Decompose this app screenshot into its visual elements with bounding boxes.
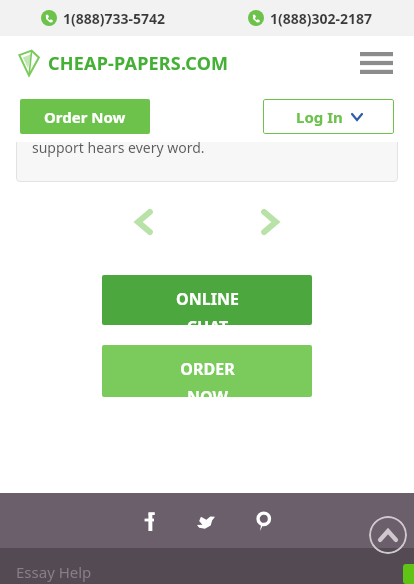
button[interactable]: support hears every word.: [16, 96, 398, 182]
button[interactable]: Facebook: [133, 509, 165, 533]
button[interactable]: Log In: [263, 99, 394, 134]
button[interactable]: Order Now: [20, 99, 150, 134]
staticText: ONLINE CHAT: [176, 288, 239, 325]
button[interactable]: Next testimonial: [252, 204, 288, 240]
staticText: Order Now: [44, 107, 126, 127]
button[interactable]: 1(888)302-2187: [207, 0, 414, 36]
staticText: CHEAP-PAPERS.COM: [48, 51, 229, 76]
button[interactable]: CHEAP-PAPERS.COM: [18, 49, 356, 77]
button[interactable]: Scroll to top: [369, 516, 407, 554]
staticText: 1(888)302-2187: [270, 9, 373, 28]
staticText: Log In: [296, 107, 343, 127]
staticText: 1(888)733-5742: [63, 9, 166, 28]
staticText: ORDER NOW: [180, 358, 235, 397]
button[interactable]: Previous testimonial: [126, 204, 162, 240]
button[interactable]: ONLINE CHAT: [102, 275, 312, 325]
button[interactable]: Live chat tab: [403, 564, 414, 584]
button[interactable]: Twitter: [190, 509, 222, 533]
button[interactable]: Pinterest: [247, 509, 279, 533]
button[interactable]: 1(888)733-5742: [0, 0, 207, 36]
staticText: Essay Help: [16, 562, 92, 582]
button[interactable]: Menu: [356, 43, 396, 83]
button[interactable]: ORDER NOW: [102, 345, 312, 397]
staticText: support hears every word.: [32, 138, 205, 157]
